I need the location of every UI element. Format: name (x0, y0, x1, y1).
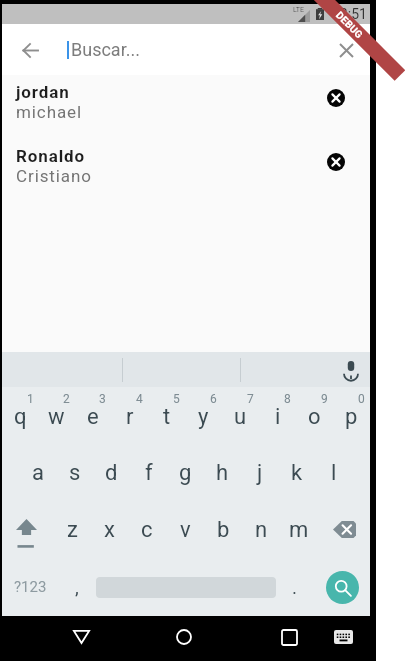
button[interactable]: ?123 (2, 558, 58, 616)
button[interactable]: jordan (2, 75, 370, 139)
button[interactable]: f (130, 444, 167, 501)
staticText: f (145, 460, 153, 486)
staticText: ?123 (14, 578, 47, 596)
staticText: m (289, 517, 309, 543)
staticText: d (105, 460, 118, 486)
staticText: Ronaldo (16, 146, 86, 166)
staticText: LTE (293, 6, 304, 14)
button[interactable]: e (74, 387, 111, 444)
staticText: t (163, 404, 171, 430)
staticText: DEBUG (333, 9, 365, 41)
staticText: c (141, 517, 153, 543)
staticText: 4 (136, 392, 143, 406)
button[interactable]: o (296, 387, 333, 444)
button[interactable]: c (128, 501, 166, 558)
staticText: jordan (16, 82, 70, 102)
staticText: k (291, 460, 303, 486)
button[interactable]: s (56, 444, 93, 501)
staticText: p (345, 404, 358, 430)
button[interactable]: Back (59, 616, 103, 658)
button[interactable]: j (241, 444, 278, 501)
button[interactable]: , (58, 558, 96, 616)
button[interactable]: b (204, 501, 242, 558)
staticText: u (234, 404, 247, 430)
button[interactable]: y (185, 387, 222, 444)
staticText: 5 (173, 392, 180, 406)
staticText: Buscar... (71, 39, 140, 60)
button[interactable]: r (111, 387, 148, 444)
staticText: e (87, 404, 99, 430)
staticText: l (331, 460, 337, 486)
button[interactable]: z (54, 501, 91, 558)
button[interactable]: w (38, 387, 74, 444)
staticText: 6 (210, 392, 217, 406)
button[interactable]: Back (8, 28, 52, 72)
button[interactable]: x (91, 501, 128, 558)
staticText: v (180, 517, 191, 543)
staticText: Cristiano (16, 166, 92, 186)
button[interactable]: Ronaldo (2, 139, 370, 203)
staticText: h (216, 460, 229, 486)
staticText: 12:51 (332, 6, 367, 22)
staticText: g (179, 460, 192, 486)
staticText: 1 (27, 392, 34, 406)
button[interactable]: l (315, 444, 352, 501)
staticText: j (257, 460, 263, 486)
button[interactable]: Switch keyboard (321, 616, 365, 658)
button[interactable]: Home (162, 616, 206, 658)
button[interactable]: Clear search (324, 28, 368, 72)
button[interactable]: d (93, 444, 130, 501)
staticText: a (32, 460, 44, 486)
staticText: 7 (247, 392, 254, 406)
button[interactable]: h (204, 444, 241, 501)
button[interactable]: a (20, 444, 56, 501)
staticText: 3 (99, 392, 106, 406)
button[interactable]: n (242, 501, 280, 558)
button[interactable]: Recent apps (267, 616, 311, 658)
button[interactable]: q (2, 387, 38, 444)
staticText: . (292, 576, 298, 598)
button[interactable]: u (222, 387, 259, 444)
staticText: r (126, 404, 134, 430)
staticText: 2 (63, 392, 70, 406)
staticText: i (275, 404, 281, 430)
button[interactable]: p (333, 387, 370, 444)
button[interactable]: . (276, 558, 314, 616)
staticText: z (67, 517, 78, 543)
staticText: x (104, 517, 115, 543)
staticText: n (255, 517, 268, 543)
button[interactable]: Remove from history (319, 81, 353, 115)
staticText: o (308, 404, 321, 430)
staticText: b (217, 517, 230, 543)
staticText: y (198, 404, 209, 430)
staticText: , (75, 576, 79, 598)
button[interactable]: t (148, 387, 185, 444)
staticText: michael (16, 102, 82, 122)
staticText: 9 (321, 392, 328, 406)
button[interactable]: Voice input (334, 353, 368, 387)
button[interactable]: Shift (2, 501, 54, 558)
button[interactable]: g (167, 444, 204, 501)
button[interactable]: Remove from history (319, 145, 353, 179)
button[interactable]: Backspace (318, 501, 370, 558)
staticText: w (48, 404, 65, 430)
staticText: 8 (284, 392, 291, 406)
button[interactable]: v (166, 501, 204, 558)
staticText: s (69, 460, 81, 486)
button[interactable]: Search (326, 571, 359, 604)
button[interactable]: i (259, 387, 296, 444)
staticText: q (14, 404, 27, 430)
button[interactable]: m (280, 501, 318, 558)
staticText: 0 (358, 392, 365, 406)
button[interactable]: k (278, 444, 315, 501)
